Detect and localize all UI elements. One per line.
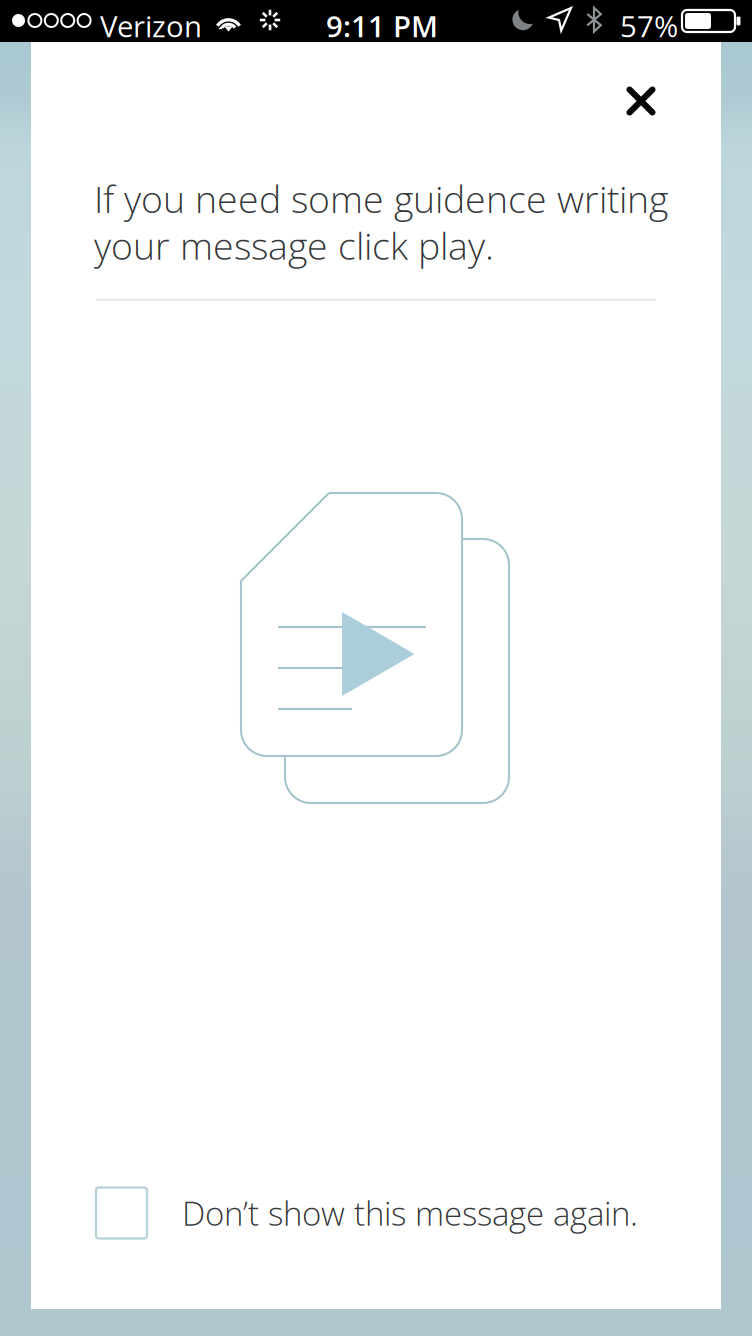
button[interactable]: Don’t show this message again. [96,1183,656,1243]
staticText: 57% [620,6,678,46]
staticText: Verizon [100,6,202,46]
button[interactable]: Close [608,68,673,133]
staticText: 9:11 PM [326,6,438,46]
staticText: Don’t show this message again. [182,1191,638,1235]
staticText: If you need some guidence writing your m… [94,173,668,271]
